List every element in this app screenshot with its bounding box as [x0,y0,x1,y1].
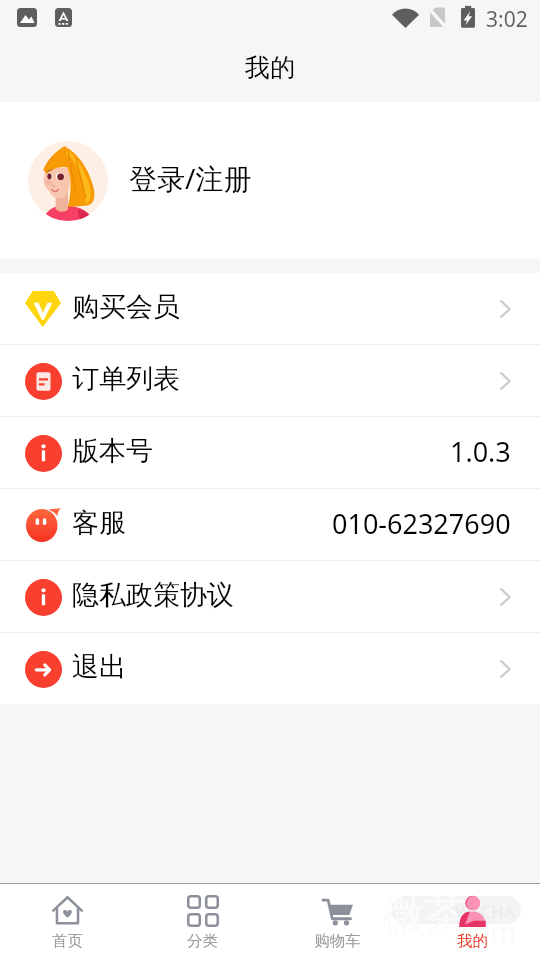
button[interactable]: 购买会员 [0,273,540,344]
staticText: 客服 [72,506,126,540]
staticText: .com [452,912,517,950]
staticText: WXCHA [455,900,515,923]
staticText: 购物车 [314,931,361,951]
button[interactable]: 版本号 [0,417,540,488]
staticText: 我的 [245,52,295,83]
staticText: 订单列表 [72,362,180,396]
staticText: 010-62327690 [332,505,511,542]
button[interactable]: 登录/注册 [0,102,540,259]
staticText: 退出 [72,650,126,684]
staticText: 分类 [187,931,218,951]
button[interactable]: 我的 [405,884,540,960]
staticText: 3:02 [486,5,528,34]
staticText: 首页 [52,931,83,951]
staticText: 我的 [457,931,488,951]
button[interactable]: 购物车 [270,884,405,960]
button[interactable]: 分类 [135,884,270,960]
button[interactable]: 首页 [0,884,135,960]
button[interactable]: 客服 [0,489,540,560]
button[interactable]: 退出 [0,633,540,704]
staticText: 微茶 [383,890,467,943]
staticText: 隐私政策协议 [72,578,234,612]
button[interactable]: 隐私政策协议 [0,561,540,632]
staticText: 登录/注册 [129,159,252,197]
staticText: 版本号 [72,434,153,468]
button[interactable]: 订单列表 [0,345,540,416]
staticText: 1.0.3 [450,433,511,470]
staticText: 购买会员 [72,290,180,324]
